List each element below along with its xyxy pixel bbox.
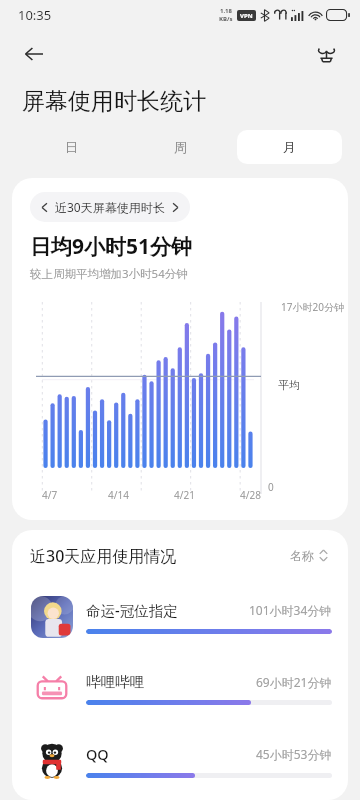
staticText: 69小时21分钟 (256, 674, 332, 690)
staticText: 17小时20分钟 (281, 300, 344, 314)
button[interactable]: 名称 (286, 544, 332, 567)
button[interactable]: Focus mode (306, 34, 346, 74)
staticText: 日 (65, 139, 78, 155)
staticText: 近30天屏幕使用时长 (55, 199, 165, 215)
staticText: VPN (240, 12, 253, 20)
staticText: 4/28 (240, 488, 261, 502)
staticText: 0 (268, 480, 274, 494)
staticText: 平均 (278, 378, 300, 392)
staticText: 4/21 (174, 488, 195, 502)
staticText: 1.18 (220, 7, 232, 15)
staticText: 45小时53分钟 (256, 746, 332, 762)
staticText: 名称 (290, 548, 314, 563)
staticText: 月 (283, 139, 296, 155)
button[interactable]: 哔哩哔哩 (12, 653, 348, 725)
staticText: KB/s (219, 15, 233, 23)
button[interactable]: 日 (18, 130, 124, 164)
staticText: 4/7 (42, 488, 58, 502)
button[interactable]: QQ (12, 725, 348, 797)
staticText: 近30天应用使用情况 (30, 545, 177, 567)
staticText: 屏幕使用时长统计 (22, 87, 206, 116)
staticText: 哔哩哔哩 (86, 673, 144, 691)
staticText: 日均9小时51分钟 (30, 232, 193, 261)
staticText: 较上周期平均增加3小时54分钟 (30, 266, 188, 282)
staticText: 4/14 (108, 488, 129, 502)
staticText: 101小时34分钟 (249, 602, 332, 618)
staticText: 10:35 (18, 6, 52, 24)
staticText: 周 (174, 139, 187, 155)
staticText: 命运-冠位指定 (86, 600, 178, 620)
button[interactable]: 月 (237, 130, 342, 164)
button[interactable]: 命运-冠位指定 (12, 581, 348, 653)
button[interactable]: 近30天屏幕使用时长 (30, 192, 190, 222)
staticText: QQ (86, 744, 109, 764)
button[interactable]: 周 (128, 130, 233, 164)
button[interactable]: Back (14, 34, 54, 74)
